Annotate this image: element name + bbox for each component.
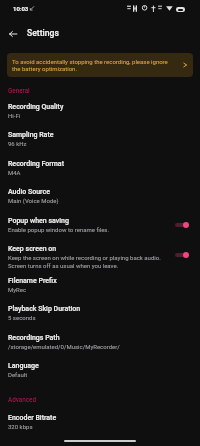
staticText: 10:03 [13, 5, 29, 12]
button[interactable]: Back [1, 22, 25, 46]
staticText: Enable popup window to rename files. [8, 226, 110, 233]
staticText: Filename Prefix [8, 277, 57, 285]
staticText: 5 seconds [8, 314, 36, 321]
staticText: Main (Voice Mode) [8, 197, 59, 204]
button[interactable]: Encoder Bitrate [0, 410, 200, 431]
staticText: General [8, 87, 30, 94]
staticText: Sampling Rate [8, 131, 54, 139]
staticText: To avoid accidentally stopping the recor… [12, 58, 174, 73]
staticText: Advanced [8, 396, 36, 403]
staticText: Playback Skip Duration [8, 305, 81, 313]
staticText: Settings [27, 28, 59, 38]
staticText: 96 kHz [8, 140, 27, 147]
staticText: Language [8, 362, 39, 370]
staticText: Keep screen on [8, 245, 57, 253]
staticText: Hi-Fi [8, 112, 21, 119]
button[interactable]: Filename Prefix [0, 273, 200, 294]
staticText: Encoder Bitrate [8, 414, 57, 422]
staticText: Recordings Path [8, 334, 60, 342]
staticText: MyRec [8, 286, 27, 293]
button[interactable]: Audio Source [0, 184, 200, 205]
button[interactable]: To avoid accidentally stopping the recor… [7, 53, 193, 77]
staticText: Screen turns off as usual when you leave… [8, 262, 119, 269]
button[interactable]: Popup when saving [0, 213, 200, 234]
button[interactable]: Language [0, 358, 200, 379]
button[interactable]: Toggle [175, 218, 189, 231]
button[interactable]: Recording Format [0, 156, 200, 177]
staticText: M4A [8, 169, 21, 176]
staticText: Recording Format [8, 160, 64, 168]
staticText: 320 kbps [8, 423, 33, 430]
staticText: Keep the screen on while recording or pl… [8, 254, 161, 261]
staticText: Audio Source [8, 188, 50, 196]
button[interactable]: Toggle [175, 248, 189, 261]
button[interactable]: Recording Quality [0, 99, 200, 120]
button[interactable]: Sampling Rate [0, 127, 200, 148]
staticText: Default [8, 371, 28, 378]
staticText: /storage/emulated/0/Music/MyRecorder/ [8, 343, 120, 350]
button[interactable]: Recordings Path [0, 330, 200, 351]
button[interactable]: Keep screen on [0, 241, 200, 270]
staticText: Popup when saving [8, 217, 69, 225]
staticText: Recording Quality [8, 103, 64, 111]
button[interactable]: Playback Skip Duration [0, 301, 200, 322]
